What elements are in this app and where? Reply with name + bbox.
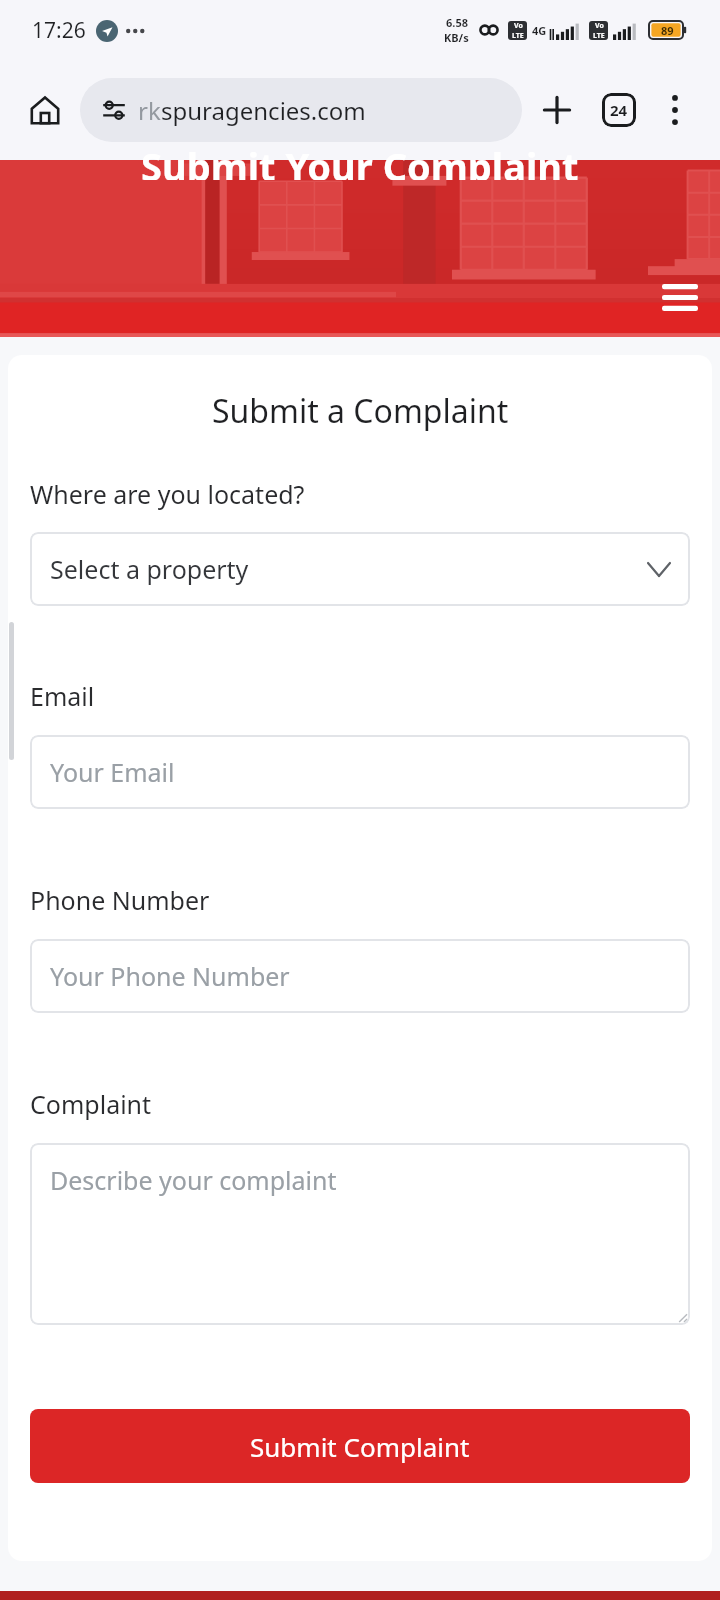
button[interactable]: Your Email: [30, 735, 690, 809]
button[interactable]: Your Phone Number: [30, 939, 690, 1013]
staticText: 89: [661, 23, 674, 38]
button[interactable]: Submit Complaint: [30, 1409, 690, 1483]
button[interactable]: Home: [22, 87, 68, 133]
staticText: Submit a Complaint: [212, 389, 509, 433]
staticText: Email: [30, 679, 95, 713]
staticText: LTE: [512, 31, 524, 40]
button[interactable]: Menu: [656, 277, 704, 317]
button[interactable]: Tabs: 24: [594, 85, 644, 135]
staticText: Your Email: [50, 755, 175, 789]
staticText: Phone Number: [30, 883, 210, 917]
staticText: 6.58: [446, 15, 468, 30]
staticText: Submit Your Complaint: [141, 140, 579, 180]
staticText: Your Phone Number: [50, 959, 290, 993]
staticText: Submit Complaint: [250, 1429, 470, 1464]
staticText: 4G: [532, 23, 547, 38]
staticText: Vo: [514, 21, 523, 31]
button[interactable]: New tab: [532, 85, 582, 135]
button[interactable]: rk: [80, 78, 522, 142]
staticText: Select a property: [50, 552, 249, 586]
staticText: KB/s: [444, 30, 469, 45]
staticText: Complaint: [30, 1087, 152, 1121]
button[interactable]: More options: [652, 87, 698, 133]
staticText: Vo: [595, 21, 604, 31]
staticText: 24: [610, 100, 628, 120]
staticText: Where are you located?: [30, 477, 305, 511]
button[interactable]: Describe your complaint: [30, 1143, 690, 1325]
staticText: 17:26: [32, 16, 86, 45]
staticText: LTE: [593, 31, 605, 40]
staticText: spuragencies.com: [161, 94, 366, 127]
staticText: Describe your complaint: [50, 1163, 337, 1197]
staticText: rk: [138, 94, 161, 127]
button[interactable]: Select a property: [30, 532, 690, 606]
